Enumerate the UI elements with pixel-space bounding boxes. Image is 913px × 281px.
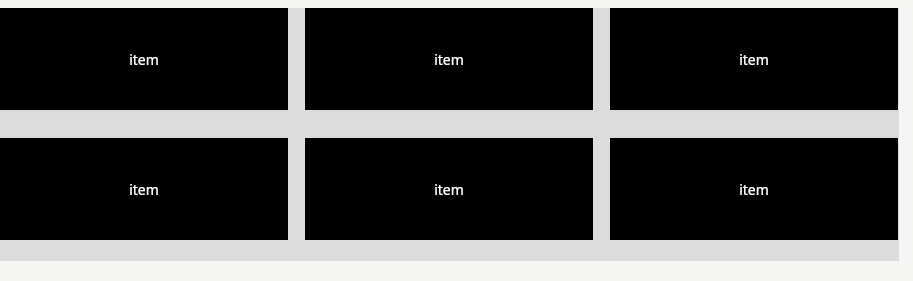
- button[interactable]: item: [610, 138, 898, 240]
- staticText: item: [434, 50, 464, 69]
- staticText: item: [739, 50, 769, 69]
- button[interactable]: item: [610, 8, 898, 110]
- button[interactable]: item: [0, 138, 288, 240]
- button[interactable]: item: [0, 8, 288, 110]
- staticText: item: [739, 180, 769, 199]
- button[interactable]: item: [305, 8, 593, 110]
- button[interactable]: item: [305, 138, 593, 240]
- staticText: item: [129, 180, 159, 199]
- staticText: item: [434, 180, 464, 199]
- staticText: item: [129, 50, 159, 69]
